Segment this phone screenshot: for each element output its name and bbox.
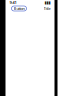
staticText: Button [13, 6, 24, 11]
staticText: 9:41 [9, 0, 16, 5]
staticText: Title [43, 6, 50, 11]
staticText: ▮▮▮ [44, 0, 50, 5]
